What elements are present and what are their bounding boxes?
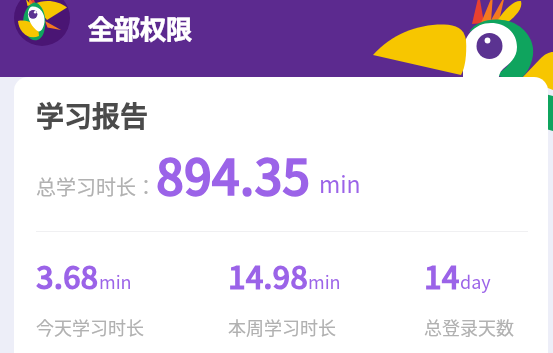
staticText: 14 xyxy=(424,253,460,298)
staticText: 学习报告 xyxy=(36,95,149,136)
staticText: 894.35 xyxy=(156,138,311,209)
staticText: day xyxy=(460,268,491,294)
staticText: 总学习时长： xyxy=(36,172,156,201)
staticText: 3.68 xyxy=(36,253,99,298)
button[interactable]: 14 xyxy=(424,253,534,340)
button[interactable]: 14.98 xyxy=(228,253,424,340)
staticText: 14.98 xyxy=(228,253,308,298)
button[interactable]: 3.68 xyxy=(36,253,228,340)
staticText: 总登录天数 xyxy=(424,314,514,340)
staticText: min xyxy=(319,166,361,199)
button[interactable]: App logo xyxy=(14,0,70,46)
staticText: 本周学习时长 xyxy=(228,314,336,340)
staticText: min xyxy=(308,268,341,294)
staticText: min xyxy=(99,268,132,294)
staticText: 今天学习时长 xyxy=(36,314,144,340)
staticText: 全部权限 xyxy=(88,9,193,47)
